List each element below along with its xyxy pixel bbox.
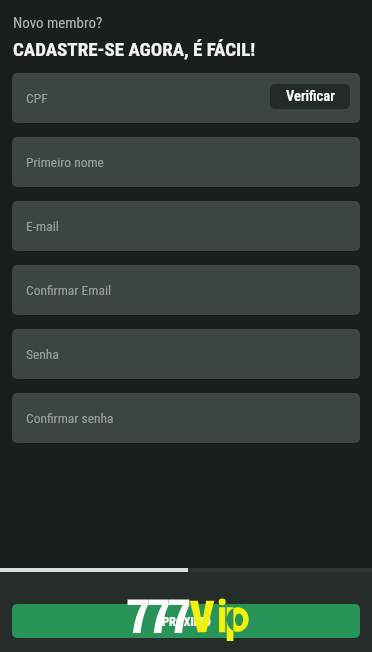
staticText: PRÓXIMO xyxy=(162,614,211,629)
button[interactable]: Confirmar senha xyxy=(12,393,360,443)
staticText: Confirmar senha xyxy=(26,410,114,426)
staticText: Primeiro nome xyxy=(26,154,104,170)
button[interactable]: CPF xyxy=(12,73,360,123)
staticText: CADASTRE-SE AGORA, É FÁCIL! xyxy=(13,38,256,60)
staticText: E-mail xyxy=(26,218,59,234)
button[interactable]: Verificar xyxy=(270,84,350,109)
button[interactable]: Primeiro nome xyxy=(12,137,360,187)
staticText: CPF xyxy=(26,90,48,106)
staticText: Novo membro? xyxy=(13,14,103,32)
button[interactable]: Senha xyxy=(12,329,360,379)
button[interactable]: Confirmar Email xyxy=(12,265,360,315)
button[interactable]: E-mail xyxy=(12,201,360,251)
button[interactable]: PRÓXIMO xyxy=(12,604,360,638)
staticText: Senha xyxy=(26,346,59,362)
staticText: Verificar xyxy=(286,88,335,105)
staticText: Confirmar Email xyxy=(26,282,112,298)
